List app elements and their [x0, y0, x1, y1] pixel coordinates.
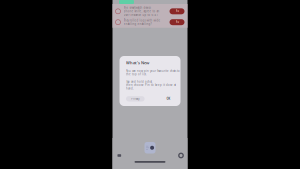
- staticText: Fix: [175, 20, 178, 24]
- button[interactable]: Camera: [177, 151, 185, 159]
- staticText: the top of list.: [126, 72, 147, 76]
- staticText: then choose Pin to keep it close at: [126, 83, 176, 87]
- button[interactable]: Fix: [169, 19, 184, 25]
- button[interactable]: Privacy: [126, 96, 145, 101]
- button[interactable]: OK: [166, 97, 180, 100]
- staticText: Tap and hold a chat,: [126, 80, 153, 83]
- staticText: What's New: [126, 60, 149, 65]
- staticText: user instance up to 6:41: [123, 13, 158, 17]
- staticText: They rolled logs with wide: [123, 19, 160, 22]
- staticText: Fix: [175, 9, 178, 13]
- staticText: enabling enabling?: [123, 22, 151, 26]
- staticText: Privacy: [131, 97, 139, 100]
- staticText: The smartwatch device: [123, 6, 151, 9]
- button[interactable]: Fix: [169, 8, 184, 14]
- staticText: OK: [166, 97, 170, 100]
- staticText: You can now pin your favourite chats to: [126, 69, 180, 73]
- staticText: hand.: [126, 87, 134, 90]
- button[interactable]: Flashlight: [115, 151, 123, 159]
- staticText: phone knife, agree to an: [123, 9, 159, 13]
